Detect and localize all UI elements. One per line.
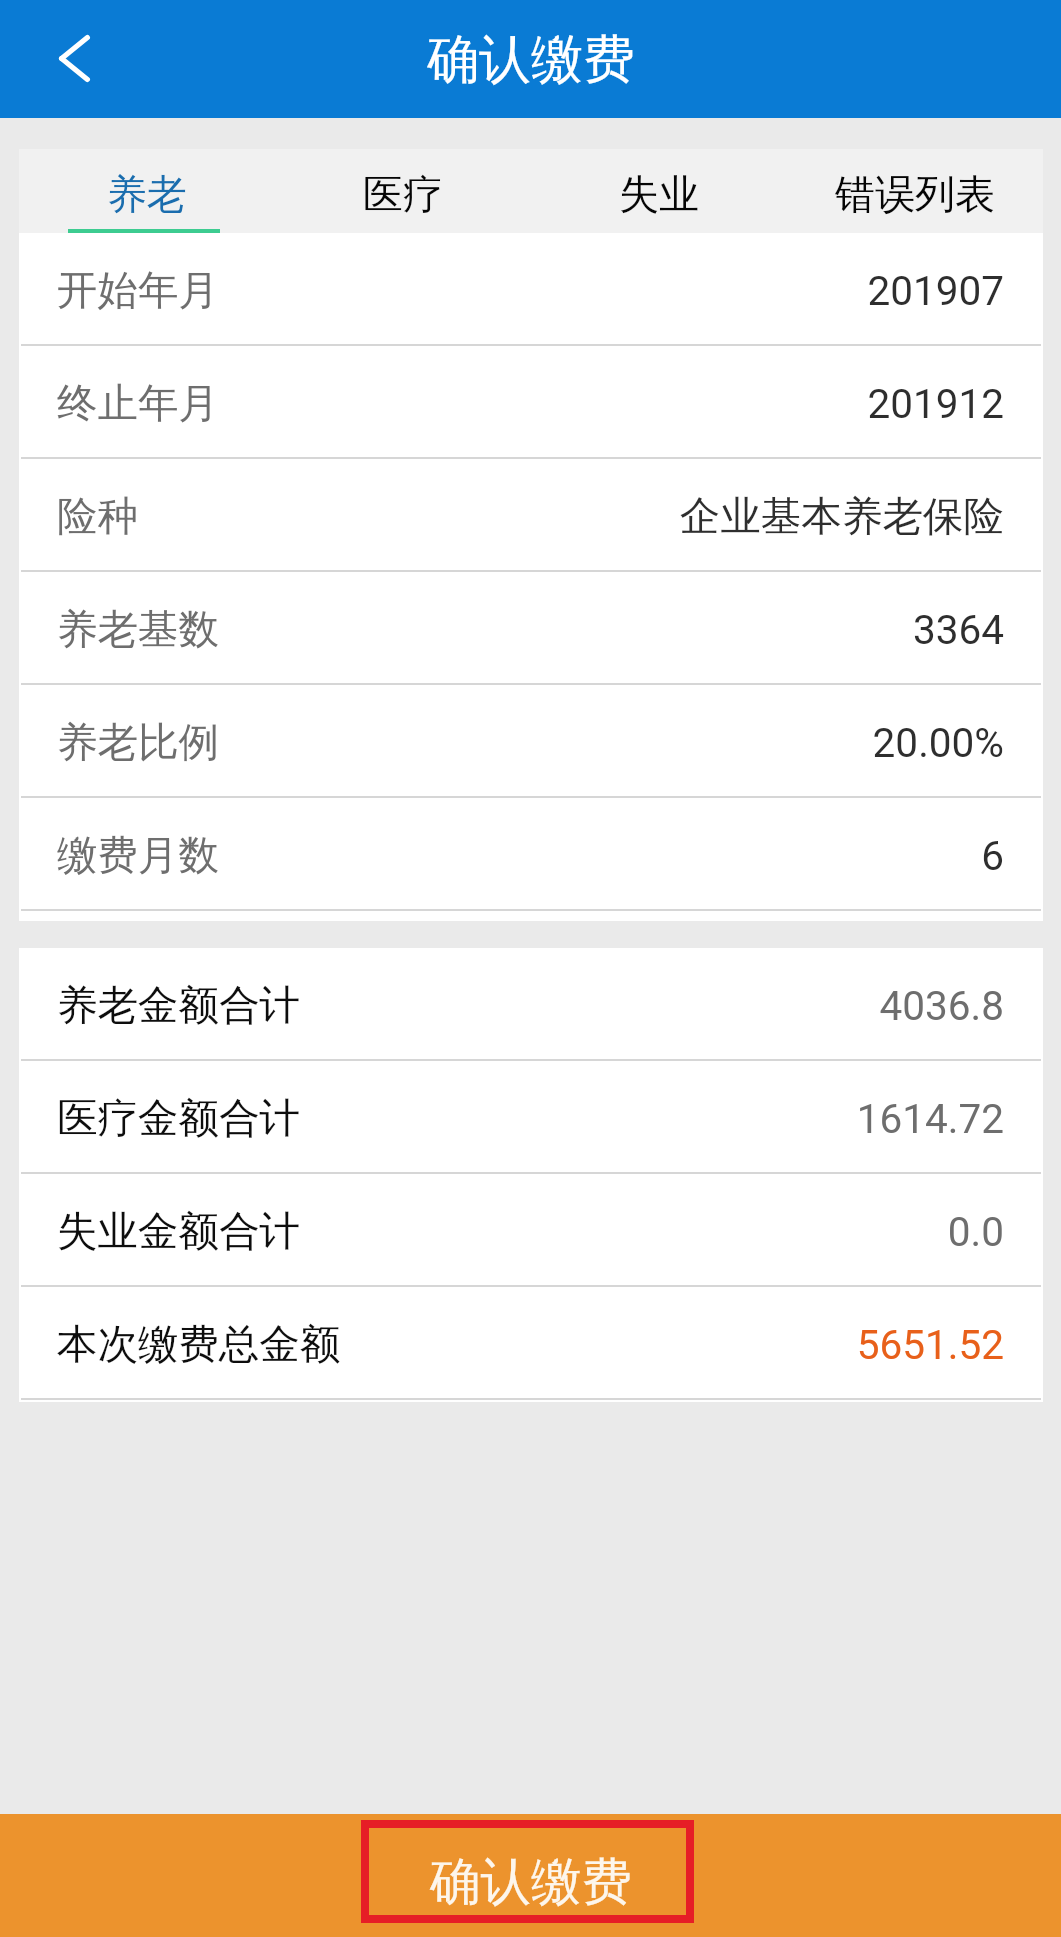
staticText: 20.00% (872, 719, 1004, 766)
button[interactable]: 养老基数 (19, 572, 1043, 683)
button[interactable]: 开始年月 (19, 233, 1043, 344)
staticText: 1614.72 (856, 1095, 1004, 1142)
button[interactable]: 险种 (19, 459, 1043, 570)
staticText: 养老金额合计 (57, 980, 300, 1031)
staticText: 医疗 (363, 169, 443, 219)
staticText: 终止年月 (57, 378, 219, 429)
staticText: 201912 (867, 380, 1004, 427)
staticText: 确认缴费 (427, 27, 635, 93)
staticText: 错误列表 (835, 169, 995, 219)
staticText: 失业 (619, 169, 699, 219)
staticText: 养老 (107, 169, 187, 219)
staticText: 险种 (57, 491, 138, 542)
staticText: 医疗金额合计 (57, 1093, 300, 1144)
button[interactable]: 失业 (531, 149, 787, 233)
staticText: 养老比例 (57, 717, 219, 768)
staticText: 0.0 (947, 1208, 1004, 1255)
staticText: 3364 (912, 606, 1004, 653)
staticText: 养老基数 (57, 604, 219, 655)
staticText: 4036.8 (879, 982, 1004, 1029)
staticText: 缴费月数 (57, 830, 219, 881)
staticText: 201907 (867, 267, 1004, 314)
button[interactable]: 终止年月 (19, 346, 1043, 457)
button[interactable]: 医疗 (275, 149, 531, 233)
button[interactable]: 养老 (19, 149, 275, 233)
button[interactable]: 养老比例 (19, 685, 1043, 796)
staticText: 开始年月 (57, 265, 219, 316)
button[interactable]: 医疗金额合计 (19, 1061, 1043, 1172)
button[interactable]: 缴费月数 (19, 798, 1043, 909)
button[interactable]: 确认缴费 (0, 1814, 1061, 1937)
staticText: 企业基本养老保险 (680, 491, 1004, 542)
button[interactable]: 养老金额合计 (19, 948, 1043, 1059)
staticText: 失业金额合计 (57, 1206, 300, 1257)
staticText: 5651.52 (856, 1321, 1004, 1368)
staticText: 本次缴费总金额 (57, 1319, 341, 1370)
button[interactable]: 本次缴费总金额 (19, 1287, 1043, 1398)
button[interactable]: 失业金额合计 (19, 1174, 1043, 1285)
staticText: 6 (981, 832, 1004, 879)
button[interactable]: Back (28, 13, 120, 105)
staticText: 确认缴费 (430, 1850, 632, 1914)
button[interactable]: 错误列表 (787, 149, 1043, 233)
